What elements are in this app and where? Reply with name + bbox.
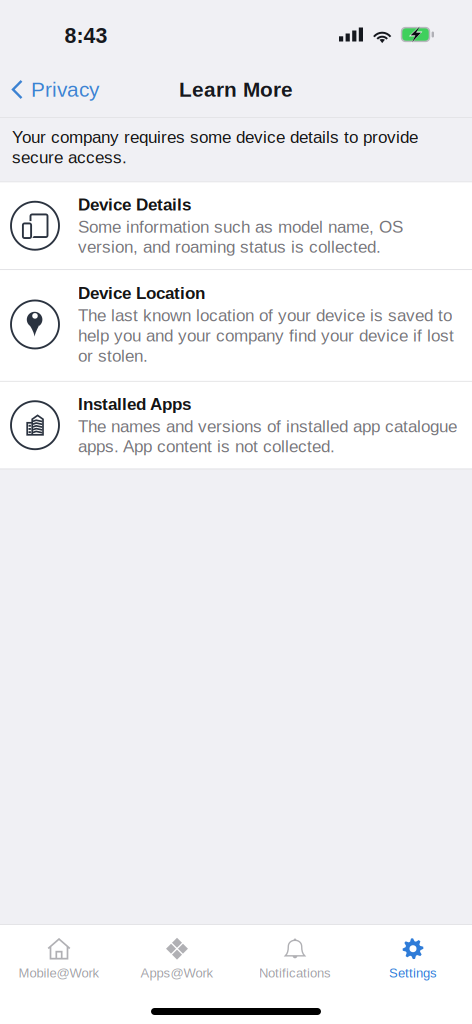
staticText: Installed Apps	[78, 394, 191, 414]
staticText: 8:43	[64, 24, 107, 47]
button[interactable]: Apps@Work	[118, 928, 236, 988]
button[interactable]: Device Details	[0, 182, 472, 269]
button[interactable]: Notifications	[236, 928, 354, 988]
button[interactable]: Installed Apps	[0, 382, 472, 468]
staticText: Learn More	[179, 78, 293, 101]
staticText: Device Location	[78, 283, 205, 303]
button[interactable]: Privacy	[0, 72, 109, 107]
staticText: The last known location of your device i…	[78, 305, 454, 366]
staticText: Apps@Work	[140, 966, 213, 980]
staticText: The names and versions of installed app …	[78, 416, 457, 456]
staticText: Notifications	[259, 966, 331, 980]
staticText: Settings	[389, 966, 437, 980]
button[interactable]: Mobile@Work	[0, 928, 118, 988]
staticText: Your company requires some device detail…	[12, 127, 418, 167]
staticText: Some information such as model name, OS …	[78, 217, 403, 257]
staticText: Mobile@Work	[18, 966, 99, 980]
staticText: Device Details	[78, 194, 191, 215]
staticText: Privacy	[31, 78, 99, 101]
button[interactable]: Device Location	[0, 270, 472, 381]
button[interactable]: Settings	[354, 928, 472, 988]
